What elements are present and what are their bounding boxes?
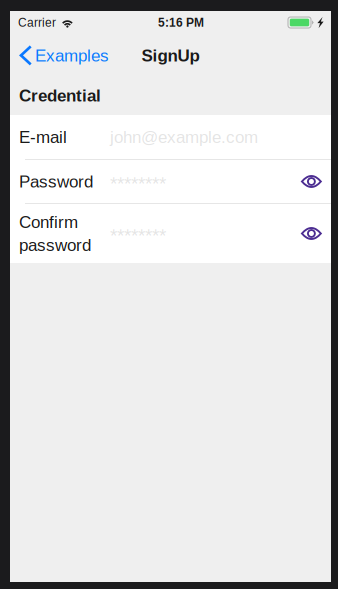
staticText: Carrier xyxy=(18,16,56,29)
staticText: Password xyxy=(19,172,93,191)
staticText: ******** xyxy=(110,225,166,246)
button[interactable]: Show password xyxy=(300,165,323,197)
staticText: john@example.com xyxy=(110,127,258,146)
staticText: 5:16 PM xyxy=(158,16,204,29)
staticText: Confirm password xyxy=(19,212,91,254)
staticText: E-mail xyxy=(19,127,67,146)
staticText: Credential xyxy=(19,86,101,105)
staticText: SignUp xyxy=(141,46,199,65)
staticText: Examples xyxy=(35,46,109,65)
staticText: ******** xyxy=(110,173,166,194)
button[interactable]: Show password xyxy=(300,217,323,249)
button[interactable]: Examples xyxy=(10,34,117,77)
